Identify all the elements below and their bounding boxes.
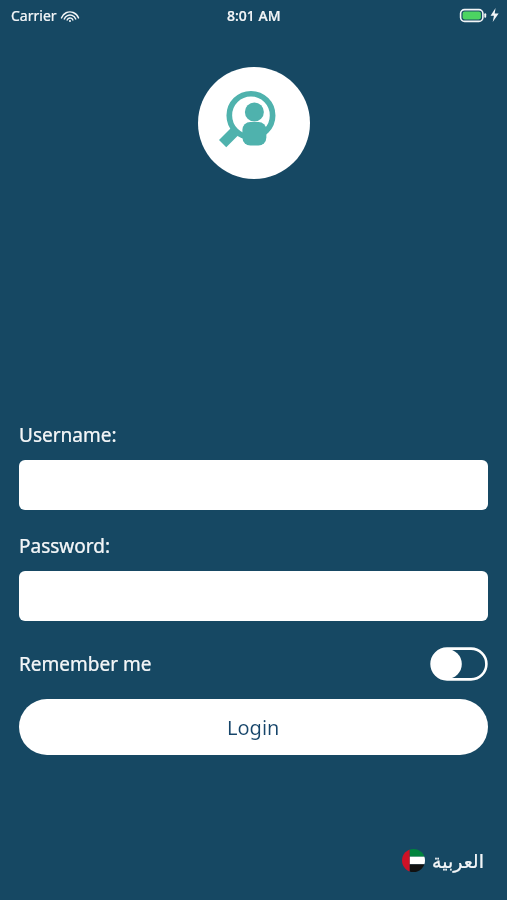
staticText: Remember me bbox=[19, 651, 152, 677]
staticText: Login bbox=[227, 714, 280, 741]
button[interactable]: العربية bbox=[398, 845, 488, 876]
staticText: Username: bbox=[19, 422, 117, 448]
staticText: Carrier bbox=[11, 6, 57, 25]
button[interactable]: Remember me toggle bbox=[430, 647, 488, 681]
staticText: Password: bbox=[19, 533, 111, 559]
button[interactable]: Text input field bbox=[19, 571, 488, 621]
button[interactable]: Text input field bbox=[19, 460, 488, 510]
button[interactable]: Remember me bbox=[19, 642, 488, 686]
button[interactable]: Login bbox=[19, 699, 488, 755]
staticText: العربية bbox=[432, 850, 484, 872]
staticText: 8:01 AM bbox=[227, 6, 281, 25]
